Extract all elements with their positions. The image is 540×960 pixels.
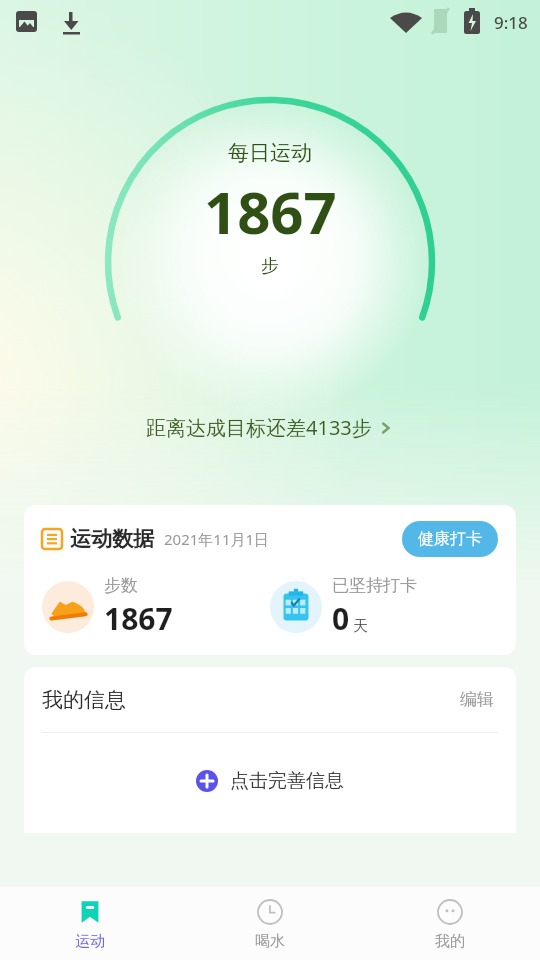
staticText: 已坚持打卡 <box>332 575 417 596</box>
staticText: 点击完善信息 <box>230 769 344 793</box>
button[interactable]: 喝水 <box>180 887 360 960</box>
staticText: 步 <box>261 255 279 278</box>
button[interactable]: 运动 <box>0 887 180 960</box>
staticText: 喝水 <box>255 932 285 951</box>
staticText: 运动数据 <box>70 526 154 552</box>
staticText: 步数 <box>104 575 138 596</box>
staticText: 2021年11月1日 <box>164 529 270 549</box>
staticText: 0 <box>332 598 350 639</box>
staticText: 健康打卡 <box>418 529 482 549</box>
staticText: 1867 <box>104 598 173 639</box>
staticText: 我的 <box>435 932 465 951</box>
staticText: 天 <box>353 617 368 636</box>
button[interactable]: 步数 <box>42 575 270 639</box>
button[interactable]: 已坚持打卡 <box>270 575 498 639</box>
staticText: 距离达成目标还差4133步 <box>146 414 372 441</box>
staticText: 每日运动 <box>228 140 312 166</box>
staticText: 1867 <box>204 172 337 251</box>
button[interactable]: 编辑 <box>456 685 498 714</box>
staticText: 9:18 <box>494 11 528 34</box>
button[interactable]: 距离达成目标还差4133步 <box>0 408 540 447</box>
staticText: 编辑 <box>460 689 494 710</box>
button[interactable]: 健康打卡 <box>402 521 498 557</box>
staticText: 我的信息 <box>42 687 126 713</box>
button[interactable]: 我的 <box>360 887 540 960</box>
staticText: 运动 <box>75 932 105 951</box>
button[interactable]: 点击完善信息 <box>24 769 516 793</box>
